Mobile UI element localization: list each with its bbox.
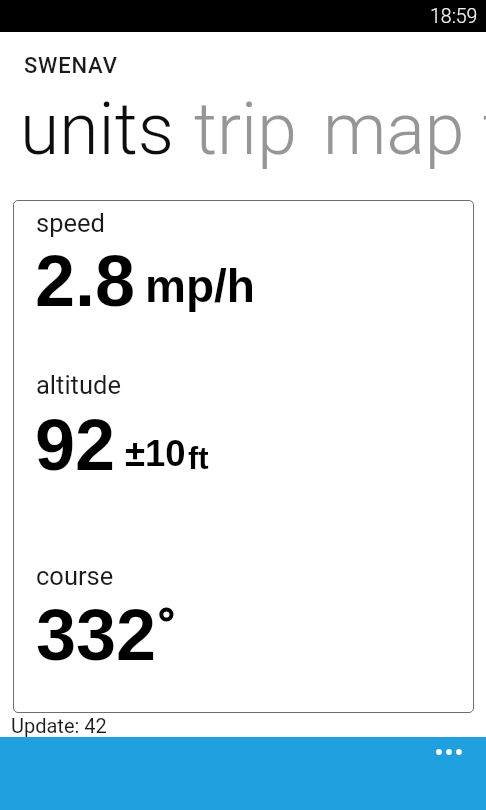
button[interactable]: map [323,88,465,172]
button[interactable]: trip [194,88,297,172]
staticText: ft [188,441,209,476]
staticText: course [36,561,114,591]
staticText: Update: 42 [11,714,107,737]
staticText: 18:59 [430,5,478,28]
staticText: ±10 [125,433,186,474]
staticText: mp/h [145,260,255,311]
staticText: 332 [36,595,157,675]
staticText: altitude [36,370,121,400]
button[interactable]: More options [424,739,470,765]
button[interactable]: More options [0,737,486,810]
staticText: speed [36,208,105,238]
button[interactable]: trip [483,88,486,172]
button[interactable]: SWENAV [24,53,118,79]
staticText: 2.8 [35,241,136,321]
staticText: 92 [35,405,116,485]
button[interactable]: units [20,88,174,172]
